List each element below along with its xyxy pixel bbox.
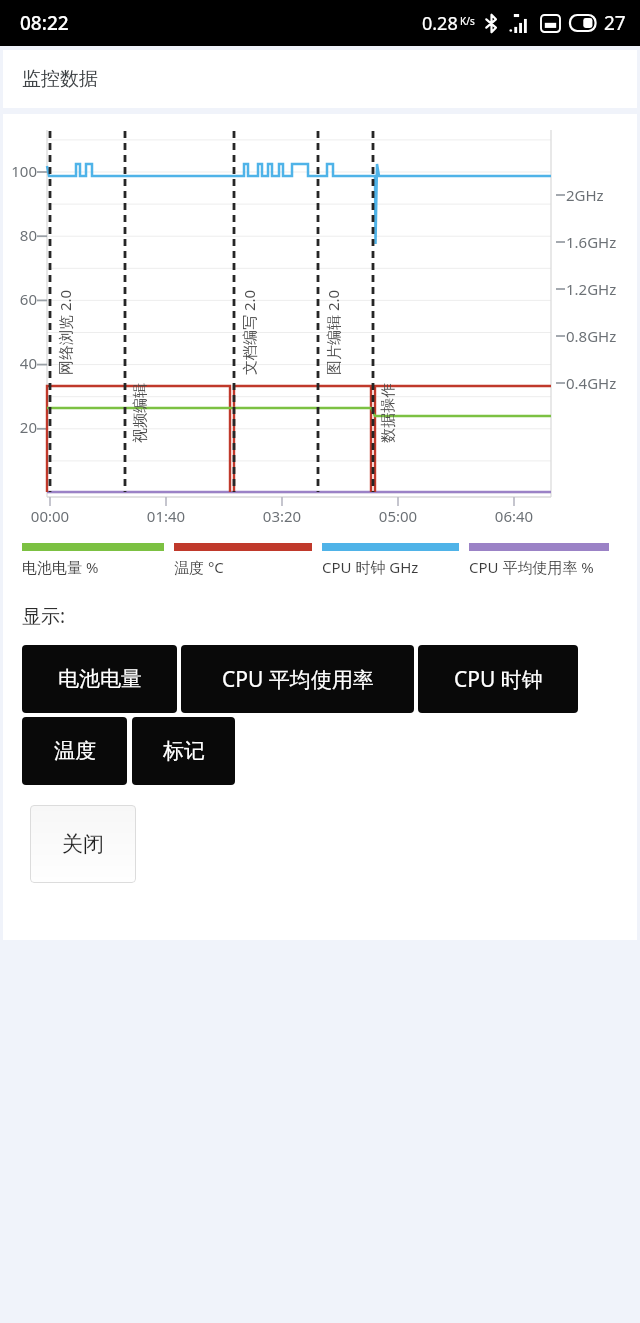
staticText: 文档编写 2.0	[239, 289, 259, 375]
other: Bluetooth	[485, 14, 498, 33]
button[interactable]: 电池电量	[22, 645, 177, 713]
staticText: 数据操作	[379, 383, 398, 443]
staticText: 1.6GHz	[566, 232, 617, 252]
button[interactable]: CPU 平均使用率	[181, 645, 414, 713]
staticText: 40	[3, 353, 37, 373]
button[interactable]: 标记	[132, 717, 235, 785]
staticText: 图片编辑 2.0	[323, 289, 343, 375]
staticText: 显示:	[22, 603, 66, 629]
staticText: 60	[3, 289, 37, 309]
staticText: 00:00	[23, 506, 77, 526]
staticText: 2GHz	[566, 185, 604, 205]
staticText: 03:20	[255, 506, 309, 526]
other: Mobile signal	[509, 14, 531, 33]
staticText: 0.4GHz	[566, 373, 617, 393]
staticText: 温度	[54, 738, 96, 764]
staticText: 电池电量	[58, 666, 142, 692]
other: HD calling	[541, 15, 560, 32]
button[interactable]: 关闭	[30, 805, 136, 883]
staticText: 27	[604, 10, 626, 36]
staticText: 温度 °C	[174, 557, 224, 577]
staticText: 0.8GHz	[566, 326, 617, 346]
staticText: K/s	[460, 14, 475, 28]
staticText: CPU 时钟 GHz	[322, 557, 419, 577]
staticText: 电池电量 %	[22, 557, 99, 577]
other: Battery	[570, 15, 599, 31]
staticText: 01:40	[139, 506, 193, 526]
staticText: CPU 平均使用率	[222, 665, 374, 694]
staticText: 视频编辑	[131, 383, 150, 443]
staticText: 08:22	[20, 10, 69, 36]
staticText: 1.2GHz	[566, 279, 617, 299]
button[interactable]: 温度	[22, 717, 127, 785]
staticText: 关闭	[62, 831, 104, 857]
staticText: 监控数据	[22, 67, 98, 91]
staticText: CPU 平均使用率 %	[469, 557, 594, 577]
staticText: 06:40	[487, 506, 541, 526]
staticText: 80	[3, 225, 37, 245]
staticText: 0.28	[422, 11, 458, 36]
button[interactable]: CPU 时钟	[418, 645, 578, 713]
staticText: 05:00	[371, 506, 425, 526]
staticText: 100	[3, 161, 37, 181]
staticText: CPU 时钟	[454, 665, 543, 694]
staticText: 网络浏览 2.0	[55, 289, 75, 375]
staticText: 标记	[163, 738, 205, 764]
staticText: 20	[3, 417, 37, 437]
